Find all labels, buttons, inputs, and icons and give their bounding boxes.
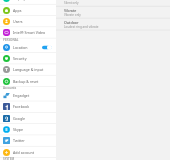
button[interactable]: Location xyxy=(0,42,56,53)
staticText: Security xyxy=(13,56,52,61)
button[interactable]: Apps xyxy=(0,5,56,16)
staticText: Users xyxy=(13,19,52,24)
button[interactable]: Add account xyxy=(0,147,56,158)
button[interactable]: Language & input xyxy=(0,64,56,75)
button[interactable]: Backup & reset xyxy=(0,76,56,87)
button[interactable]: Security xyxy=(0,53,56,64)
button[interactable]: Engadget xyxy=(0,90,56,101)
staticText: Display xyxy=(13,0,52,1)
button[interactable]: Google xyxy=(0,113,56,124)
button[interactable]: Display xyxy=(0,0,56,4)
staticText: Twitter xyxy=(13,138,52,143)
staticText: PERSONAL xyxy=(3,38,19,42)
staticText: Vibrate only xyxy=(64,13,81,17)
button[interactable]: Location on xyxy=(42,45,52,50)
button[interactable]: Silent xyxy=(56,0,79,6)
button[interactable]: Outdoor xyxy=(56,18,99,30)
staticText: Loudest ring and vibrate xyxy=(64,25,99,29)
staticText: Engadget xyxy=(13,93,52,98)
button[interactable]: Facebook xyxy=(0,101,56,112)
staticText: Add account xyxy=(13,150,52,155)
staticText: Facebook xyxy=(13,104,52,109)
button[interactable]: Skype xyxy=(0,124,56,135)
staticText: Backup & reset xyxy=(13,79,52,84)
staticText: Apps xyxy=(13,8,52,13)
button[interactable]: Twitter xyxy=(0,135,56,146)
staticText: Silent only xyxy=(64,1,79,5)
staticText: Accounts xyxy=(3,86,17,90)
staticText: Outdoor xyxy=(64,20,79,25)
button[interactable]: Intel® Smart Video xyxy=(0,27,56,38)
staticText: Language & input xyxy=(13,67,52,72)
staticText: Vibrate xyxy=(64,8,77,13)
staticText: SYSTEM xyxy=(3,157,15,160)
button[interactable]: Users xyxy=(0,16,56,27)
staticText: Intel® Smart Video xyxy=(13,30,52,35)
button[interactable]: Vibrate xyxy=(56,6,81,18)
staticText: Skype xyxy=(13,127,52,132)
staticText: Google xyxy=(13,116,52,121)
staticText: Location xyxy=(13,45,42,50)
